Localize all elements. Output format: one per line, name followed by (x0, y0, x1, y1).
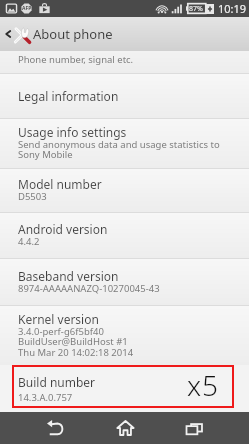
staticText: 4.4.2 (18, 235, 40, 248)
button[interactable]: Build number (0, 365, 249, 412)
staticText: Send anonymous data and usage statistics… (18, 138, 220, 161)
button[interactable]: Baseband version (0, 259, 249, 305)
staticText: Model number (18, 176, 102, 192)
staticText: Kernel version (18, 311, 99, 327)
button[interactable]: Home (83, 412, 166, 444)
button[interactable]: Usage info settings (0, 119, 249, 168)
button[interactable]: Kernel version (0, 306, 249, 365)
other: Back (4, 30, 12, 38)
staticText: Build number (18, 374, 96, 390)
staticText: Legal information (18, 88, 119, 104)
staticText: 14.3.A.0.757 (18, 391, 73, 404)
button[interactable]: Recent apps (166, 412, 249, 444)
staticText: AFP (22, 5, 32, 12)
staticText: 87% (189, 4, 203, 14)
staticText: x5 (187, 366, 219, 404)
staticText: Android version (18, 221, 108, 237)
staticText: About phone (33, 25, 113, 43)
staticText: 8974-AAAAANAZQ-10270045-43 (18, 282, 160, 295)
staticText: Phone number, signal etc. (18, 53, 134, 66)
button[interactable]: Back (0, 412, 83, 444)
staticText: 10:19 (218, 1, 247, 16)
staticText: Usage info settings (18, 124, 127, 140)
button[interactable]: Model number (0, 169, 249, 212)
staticText: 3.4.0-perf-g6f5bf40 BuildUser@BuildHost … (18, 325, 134, 359)
staticText: Baseband version (18, 268, 119, 284)
button[interactable]: Legal information (0, 74, 249, 118)
staticText: D5503 (18, 190, 47, 203)
button[interactable]: Android version (0, 213, 249, 258)
button[interactable]: Back (0, 17, 249, 51)
button[interactable]: Phone number, signal etc. (0, 51, 249, 73)
